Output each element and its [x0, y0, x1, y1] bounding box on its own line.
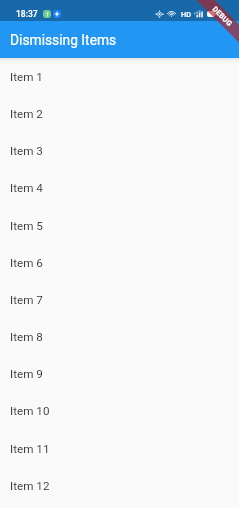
- button[interactable]: Item 10: [0, 392, 239, 429]
- staticText: Item 5: [10, 219, 43, 233]
- staticText: Dismissing Items: [10, 32, 117, 48]
- staticText: Item 8: [10, 330, 43, 344]
- button[interactable]: Item 1: [0, 58, 239, 95]
- staticText: HD: [181, 10, 192, 19]
- button[interactable]: Item 6: [0, 244, 239, 281]
- staticText: 18:37: [16, 9, 38, 19]
- button[interactable]: Item 12: [0, 467, 239, 504]
- button[interactable]: Item 11: [0, 430, 239, 467]
- button[interactable]: Item 4: [0, 169, 239, 206]
- staticText: Item 3: [10, 144, 43, 158]
- staticText: Item 6: [10, 256, 43, 270]
- button[interactable]: Item 9: [0, 355, 239, 392]
- button[interactable]: Item 3: [0, 132, 239, 169]
- staticText: Item 1: [10, 70, 43, 84]
- button[interactable]: Item 7: [0, 281, 239, 318]
- staticText: Item 4: [10, 181, 43, 195]
- button[interactable]: Item 5: [0, 207, 239, 244]
- staticText: DEBUG: [210, 4, 234, 28]
- button[interactable]: Item 2: [0, 95, 239, 132]
- staticText: Item 9: [10, 367, 43, 381]
- button[interactable]: Item 8: [0, 318, 239, 355]
- staticText: Item 10: [10, 404, 50, 418]
- staticText: Item 12: [10, 479, 50, 493]
- staticText: Item 11: [10, 442, 50, 456]
- staticText: Item 2: [10, 107, 43, 121]
- staticText: Item 7: [10, 293, 43, 307]
